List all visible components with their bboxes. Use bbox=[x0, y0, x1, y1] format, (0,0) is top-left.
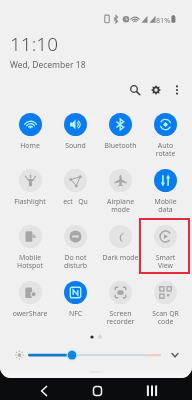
button[interactable]: Mobile Hotspot bbox=[7, 225, 53, 281]
staticText: Mobile Hotspot bbox=[7, 253, 53, 270]
staticText: Mobile data bbox=[143, 197, 188, 214]
button[interactable]: Search bbox=[125, 80, 145, 100]
button[interactable]: Sound bbox=[53, 113, 98, 169]
button[interactable]: ect Qu bbox=[53, 169, 98, 225]
button[interactable]: owerShare bbox=[7, 281, 53, 337]
button[interactable]: Dark mode bbox=[98, 225, 143, 281]
staticText: Do not disturb bbox=[53, 253, 98, 270]
button[interactable]: Recents bbox=[133, 378, 171, 400]
button[interactable]: Home bbox=[7, 113, 53, 169]
staticText: owerShare bbox=[7, 309, 53, 318]
staticText: Screen recorder bbox=[98, 309, 143, 326]
button[interactable]: Airplane mode bbox=[98, 169, 143, 225]
button[interactable]: Back bbox=[25, 378, 63, 400]
staticText: Bluetooth bbox=[98, 141, 143, 150]
button[interactable]: Settings bbox=[146, 80, 166, 100]
button[interactable]: Flashlight bbox=[7, 169, 53, 225]
staticText: ect Qu bbox=[53, 197, 98, 206]
staticText: Wed, December 18 bbox=[10, 59, 86, 71]
staticText: Airplane mode bbox=[98, 197, 143, 214]
button[interactable]: Smart View bbox=[143, 225, 188, 281]
staticText: Flashlight bbox=[7, 197, 53, 206]
button[interactable]: NFC bbox=[53, 281, 98, 337]
button[interactable]: Bluetooth bbox=[98, 113, 143, 169]
button[interactable]: Home bbox=[78, 378, 116, 400]
staticText: Auto rotate bbox=[143, 141, 188, 158]
button[interactable]: Auto rotate bbox=[143, 113, 188, 169]
button[interactable]: Do not disturb bbox=[53, 225, 98, 281]
button[interactable]: Scan QR code bbox=[143, 281, 188, 337]
button[interactable]: More options bbox=[167, 80, 187, 100]
staticText: Home bbox=[7, 141, 53, 150]
staticText: NFC bbox=[53, 309, 98, 318]
staticText: 81% bbox=[156, 15, 171, 25]
staticText: Sound bbox=[53, 141, 98, 150]
staticText: 11:10 bbox=[10, 31, 59, 57]
staticText: Smart View bbox=[143, 253, 188, 270]
staticText: Scan QR code bbox=[143, 309, 188, 326]
button[interactable]: Screen recorder bbox=[98, 281, 143, 337]
staticText: Dark mode bbox=[98, 253, 143, 262]
button[interactable]: Mobile data bbox=[143, 169, 188, 225]
